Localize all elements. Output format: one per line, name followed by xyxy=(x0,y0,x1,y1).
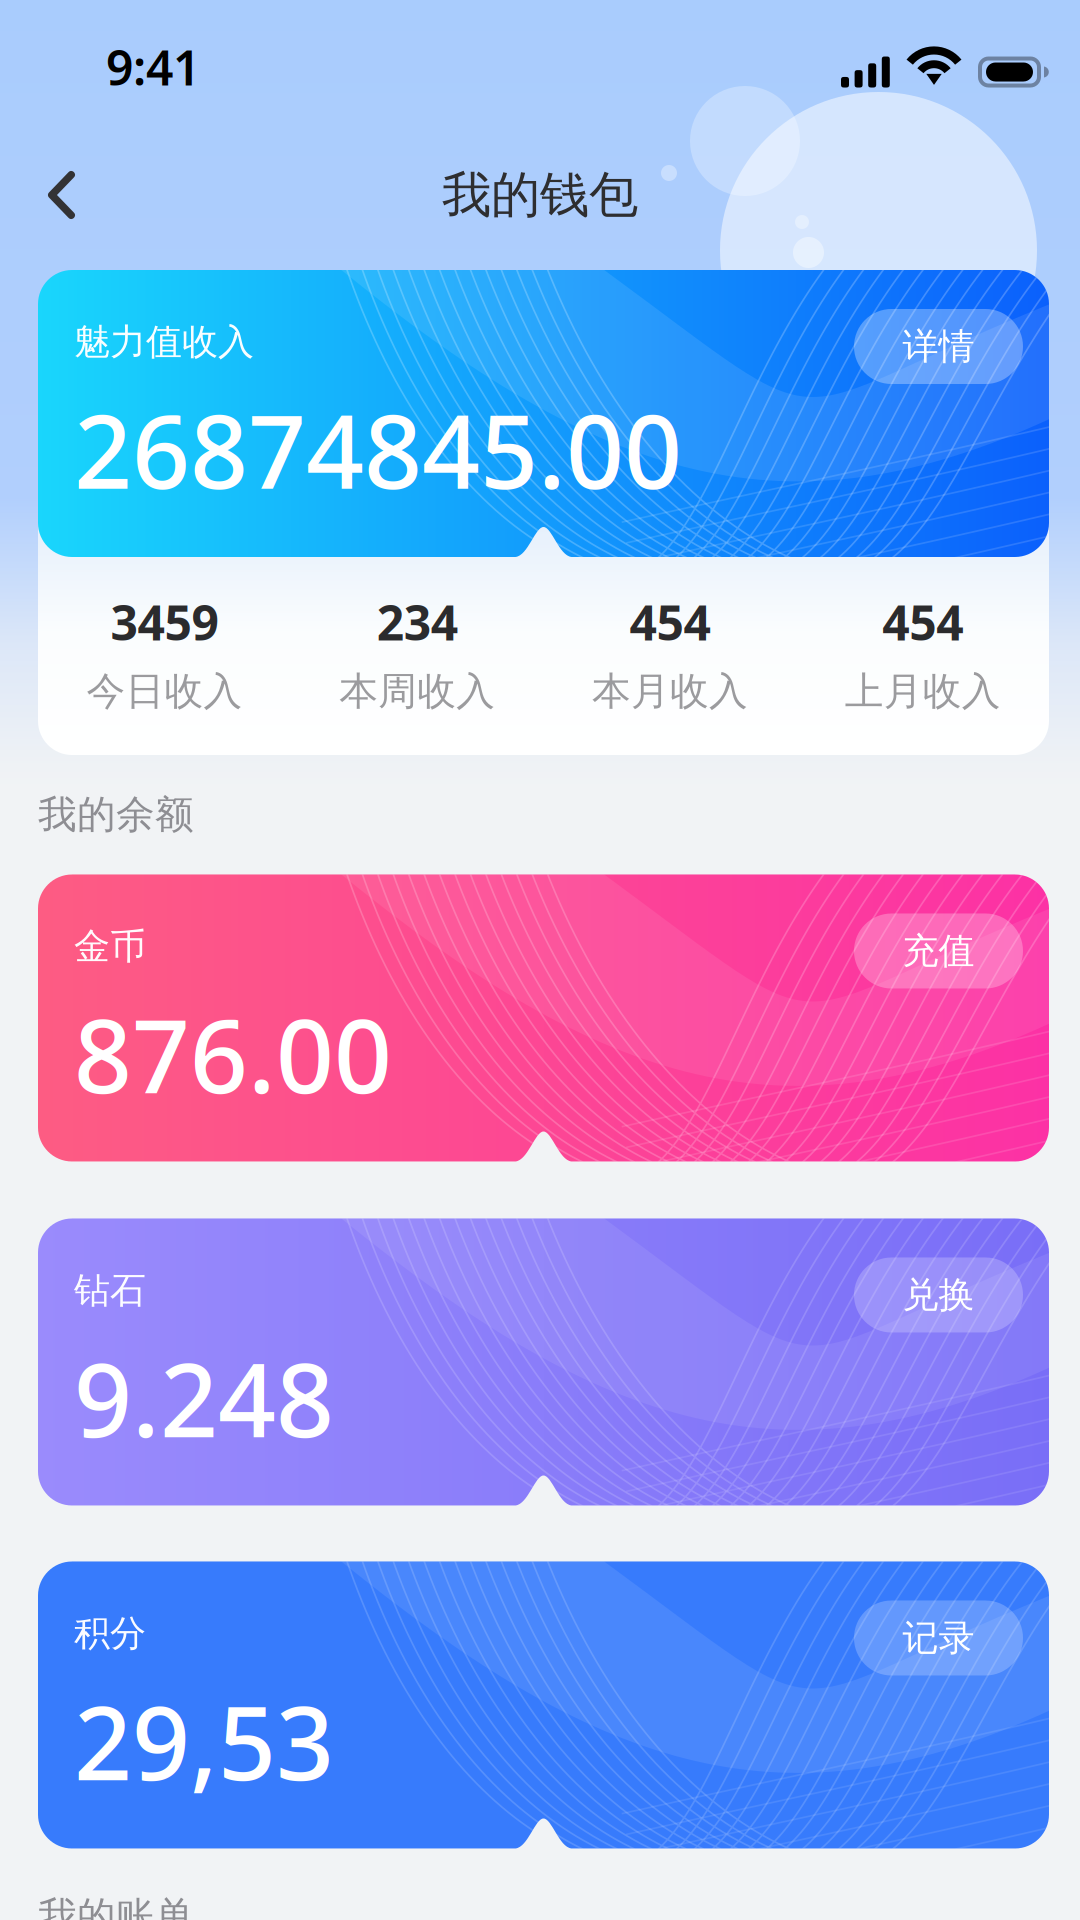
staticText: 3459 xyxy=(110,590,218,654)
staticText: 我的余额 xyxy=(38,791,194,838)
button[interactable]: 记录 xyxy=(854,1600,1023,1675)
staticText: 金币 xyxy=(74,924,146,969)
staticText: 上月收入 xyxy=(845,668,1001,715)
staticText: 本月收入 xyxy=(592,668,748,715)
staticText: 我的钱包 xyxy=(442,165,638,225)
staticText: 26874845.00 xyxy=(74,382,682,517)
staticText: 详情 xyxy=(902,324,974,369)
staticText: 本周收入 xyxy=(339,668,495,715)
staticText: 充值 xyxy=(902,929,974,973)
staticText: 兑换 xyxy=(902,1273,974,1317)
staticText: 我的账单 xyxy=(38,1892,194,1920)
button[interactable]: 兑换 xyxy=(854,1257,1023,1332)
button[interactable]: 充值 xyxy=(854,913,1023,988)
staticText: 9.248 xyxy=(74,1331,334,1465)
staticText: 记录 xyxy=(902,1616,974,1660)
staticText: 魅力值收入 xyxy=(74,320,254,364)
staticText: 876.00 xyxy=(74,987,392,1121)
staticText: 29,53 xyxy=(74,1674,334,1808)
staticText: 454 xyxy=(629,590,710,654)
staticText: 454 xyxy=(882,590,963,654)
staticText: 今日收入 xyxy=(86,668,242,715)
staticText: 积分 xyxy=(74,1611,146,1656)
staticText: 钻石 xyxy=(74,1268,146,1313)
staticText: 9:41 xyxy=(106,35,200,99)
button[interactable]: Back xyxy=(0,141,113,249)
staticText: 234 xyxy=(377,590,458,654)
button[interactable]: 详情 xyxy=(854,309,1023,384)
